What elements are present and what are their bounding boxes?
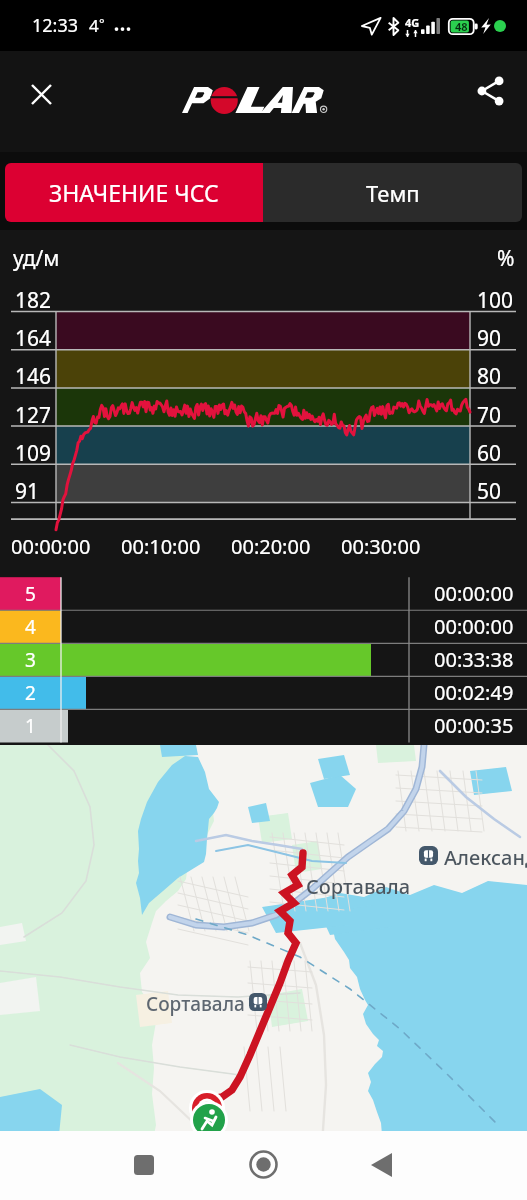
staticText: 00:00:00	[434, 613, 514, 640]
staticText: 00:33:38	[434, 646, 514, 673]
button[interactable]: 4	[0, 610, 527, 643]
staticText: 00:00:35	[434, 712, 514, 739]
staticText: 60	[477, 439, 502, 468]
staticText: °	[99, 14, 105, 32]
button[interactable]: Back	[371, 1153, 392, 1177]
button[interactable]: Recents	[134, 1155, 154, 1175]
staticText: 91	[15, 477, 40, 506]
staticText: уд/м	[13, 244, 60, 273]
staticText: ЗНАЧЕНИЕ ЧСС	[49, 177, 219, 208]
staticText: Темп	[366, 178, 420, 208]
staticText: 3	[25, 647, 36, 673]
staticText: 5	[25, 581, 36, 607]
staticText: 100	[477, 286, 514, 315]
staticText: %	[497, 244, 515, 273]
staticText: Сортавала	[306, 873, 411, 900]
staticText: 4	[25, 614, 36, 640]
staticText: 182	[15, 286, 52, 315]
staticText: 2	[25, 680, 36, 706]
staticText: 1	[25, 713, 36, 739]
staticText: 00:02:49	[434, 679, 514, 706]
button[interactable]: 1	[0, 709, 527, 742]
staticText: 4	[89, 14, 99, 37]
button[interactable]: ЗНАЧЕНИЕ ЧСС	[5, 163, 263, 222]
button[interactable]: Close	[13, 66, 69, 122]
staticText: 00:20:00	[231, 533, 311, 560]
staticText: Александ	[444, 844, 527, 871]
button[interactable]: 3	[0, 643, 527, 676]
staticText: 127	[15, 401, 52, 430]
staticText: 12:33	[32, 13, 79, 38]
staticText: 164	[15, 324, 52, 353]
button[interactable]: 5	[0, 577, 527, 610]
staticText: 4G	[405, 15, 420, 30]
button[interactable]: Темп	[263, 163, 522, 222]
staticText: 00:00:00	[11, 533, 91, 560]
staticText: Сортавала	[146, 991, 245, 1017]
staticText: 00:10:00	[121, 533, 201, 560]
staticText: 80	[477, 362, 502, 391]
staticText: 50	[477, 477, 502, 506]
button[interactable]: Home	[249, 1150, 278, 1179]
staticText: 90	[477, 324, 502, 353]
button[interactable]: 2	[0, 676, 527, 709]
staticText: 48	[455, 19, 468, 34]
staticText: 00:00:00	[434, 580, 514, 607]
staticText: 70	[477, 401, 502, 430]
staticText: 109	[15, 439, 52, 468]
button[interactable]: Share	[462, 63, 518, 119]
staticText: 146	[15, 362, 52, 391]
staticText: 00:30:00	[341, 533, 421, 560]
